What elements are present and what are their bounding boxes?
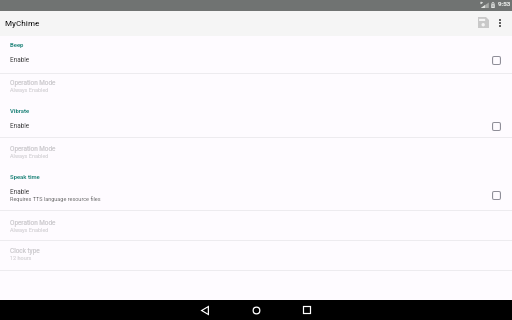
button[interactable]: Save (471, 10, 495, 34)
staticText: Requires TTS language resource files (10, 196, 101, 202)
button[interactable]: More options (489, 12, 511, 34)
staticText: Enable (10, 122, 30, 130)
staticText: Always Enabled (10, 227, 49, 233)
staticText: Enable (10, 56, 30, 64)
staticText: Always Enabled (10, 153, 49, 159)
staticText: Operation Mode (10, 145, 56, 153)
staticText: Operation Mode (10, 79, 56, 87)
button[interactable]: Operation Mode (0, 211, 512, 240)
staticText: Clock type (10, 247, 40, 255)
staticText: Beep (10, 42, 24, 49)
button[interactable]: Enable (0, 180, 512, 210)
staticText: 9:53 (498, 0, 511, 7)
button[interactable]: Enable (0, 48, 512, 73)
button[interactable]: Operation Mode (0, 74, 512, 102)
staticText: MyChime (5, 18, 40, 27)
staticText: 12 hours (10, 255, 32, 261)
button[interactable]: Home (246, 300, 266, 320)
staticText: Always Enabled (10, 87, 49, 93)
staticText: Vibrate (10, 108, 30, 115)
staticText: Operation Mode (10, 219, 56, 227)
button[interactable]: Clock type (0, 241, 512, 270)
button[interactable]: Recent apps (297, 300, 317, 320)
button[interactable]: Enable (0, 114, 512, 137)
button[interactable]: Back (195, 300, 215, 320)
staticText: Speak time (10, 174, 40, 181)
button[interactable]: Operation Mode (0, 138, 512, 168)
staticText: Enable (10, 188, 30, 196)
